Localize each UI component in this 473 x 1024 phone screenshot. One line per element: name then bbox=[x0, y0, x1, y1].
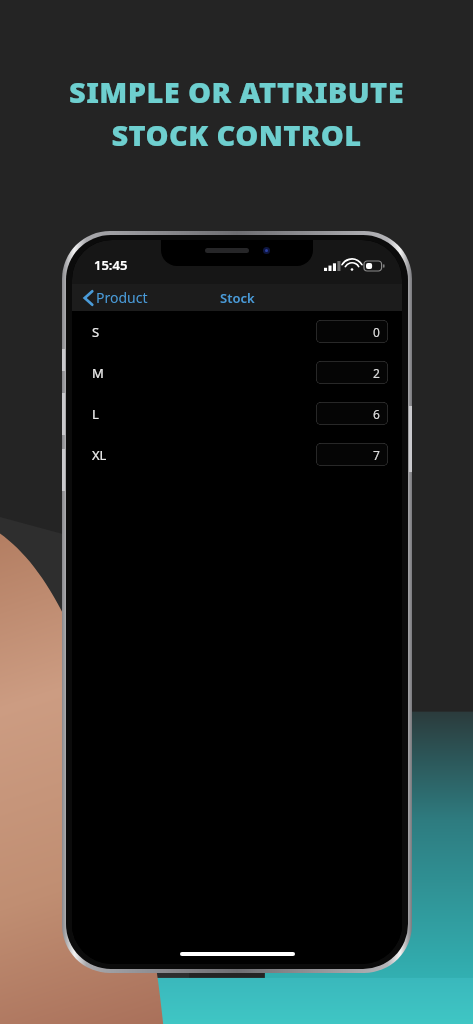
button[interactable]: 0 bbox=[316, 320, 388, 343]
staticText: 7 bbox=[373, 447, 380, 463]
button[interactable]: M bbox=[72, 352, 402, 393]
staticText: 15:45 bbox=[94, 256, 128, 274]
button[interactable]: XL bbox=[72, 434, 402, 475]
staticText: L bbox=[92, 405, 99, 423]
staticText: 6 bbox=[373, 406, 380, 422]
staticText: 0 bbox=[373, 324, 380, 340]
staticText: S bbox=[92, 323, 100, 341]
button[interactable]: L bbox=[72, 393, 402, 434]
button[interactable]: 2 bbox=[316, 361, 388, 384]
button[interactable]: Product bbox=[80, 285, 152, 310]
staticText: XL bbox=[92, 446, 107, 464]
staticText: SIMPLE OR ATTRIBUTE bbox=[69, 72, 404, 111]
staticText: Product bbox=[96, 288, 148, 307]
staticText: Stock bbox=[220, 289, 255, 307]
button[interactable]: 7 bbox=[316, 443, 388, 466]
staticText: 2 bbox=[373, 365, 380, 381]
staticText: M bbox=[92, 364, 104, 382]
button[interactable]: 6 bbox=[316, 402, 388, 425]
button[interactable]: S bbox=[72, 311, 402, 352]
staticText: STOCK CONTROL bbox=[111, 115, 362, 154]
